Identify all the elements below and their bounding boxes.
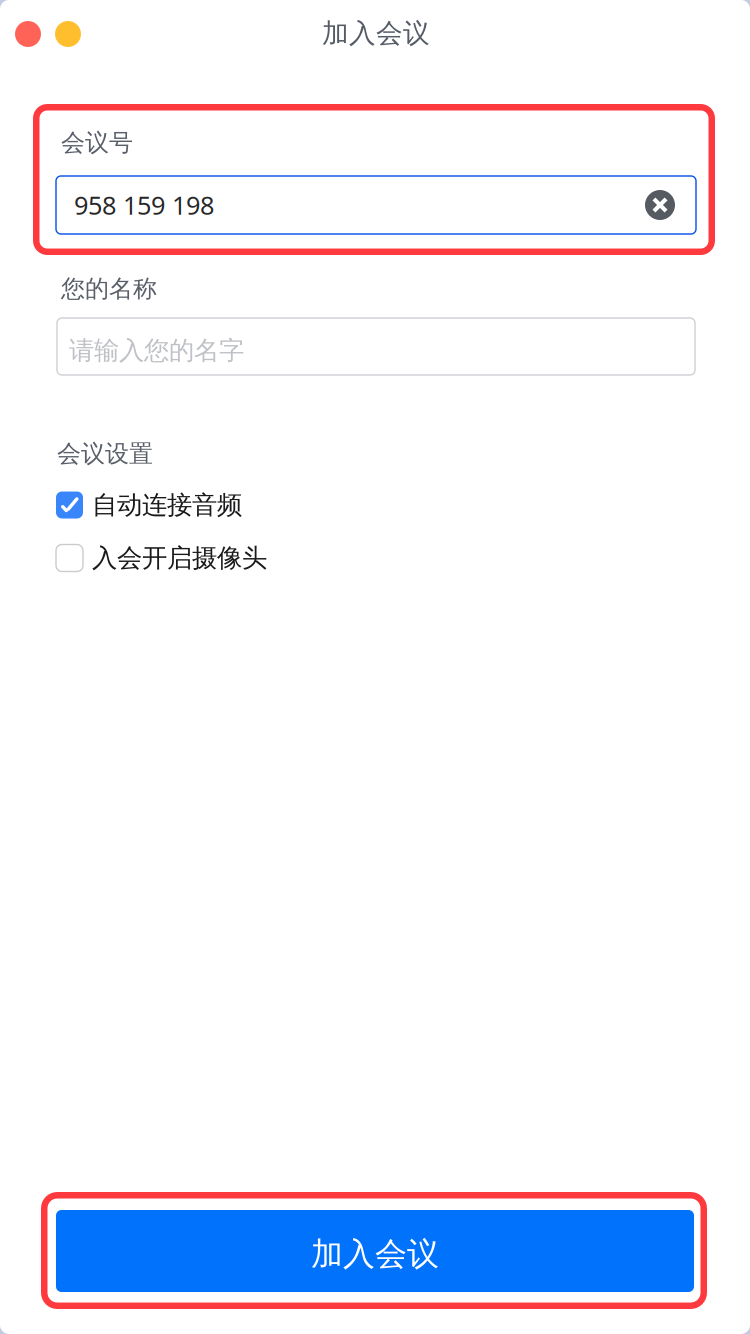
staticText: 会议设置: [57, 439, 153, 468]
staticText: 加入会议: [322, 17, 430, 50]
button[interactable]: 加入会议: [56, 1210, 694, 1292]
staticText: 自动连接音频: [92, 489, 242, 520]
button[interactable]: 会议号输入框: [56, 176, 696, 234]
staticText: 加入会议: [311, 1234, 439, 1274]
button[interactable]: 清除会议号: [645, 190, 675, 220]
staticText: 入会开启摄像头: [92, 542, 267, 573]
staticText: 会议号: [61, 128, 133, 157]
button[interactable]: 关闭: [15, 21, 41, 47]
staticText: 958 159 198: [74, 188, 214, 222]
button[interactable]: 最小化: [55, 21, 81, 47]
button[interactable]: 自动连接音频: [56, 488, 386, 522]
staticText: 请输入您的名字: [69, 335, 244, 366]
staticText: 您的名称: [61, 274, 157, 303]
button[interactable]: 入会开启摄像头: [56, 541, 386, 575]
button[interactable]: 您的名称输入框: [57, 318, 695, 375]
